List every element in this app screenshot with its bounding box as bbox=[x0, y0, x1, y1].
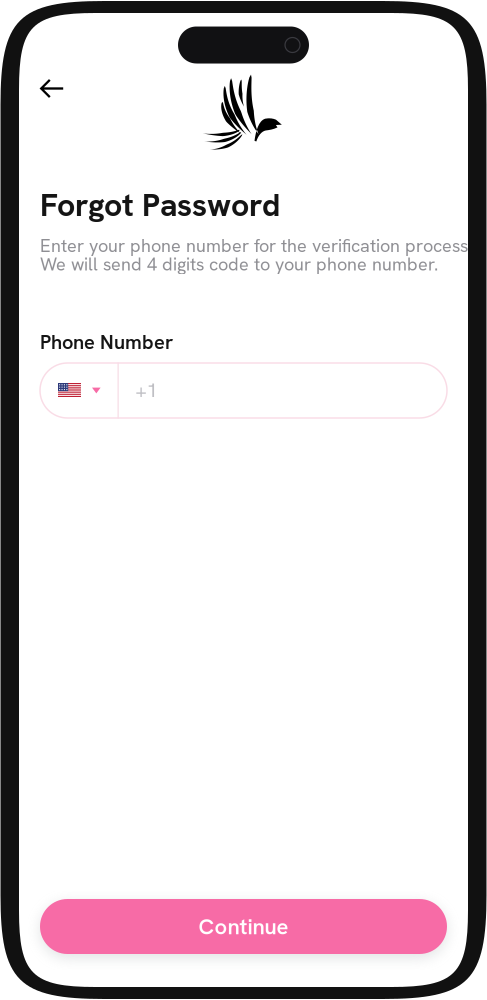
staticText: Continue bbox=[198, 912, 288, 941]
staticText: +1 bbox=[136, 377, 158, 404]
staticText: We will send 4 digits code to your phone… bbox=[40, 252, 438, 276]
button[interactable]: Back bbox=[31, 70, 73, 107]
staticText: Enter your phone number for the verifica… bbox=[40, 234, 472, 257]
staticText: Phone Number bbox=[40, 329, 173, 355]
button[interactable]: Select country code bbox=[40, 363, 118, 418]
staticText: Forgot Password bbox=[40, 184, 280, 226]
button[interactable]: Continue bbox=[40, 899, 447, 954]
